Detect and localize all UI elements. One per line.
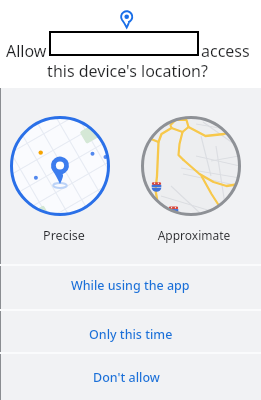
button[interactable] <box>141 116 241 216</box>
staticText: Precise <box>14 227 114 244</box>
staticText: Only this time <box>89 326 173 343</box>
staticText: Allow <box>6 40 47 62</box>
staticText: access <box>201 40 250 62</box>
staticText: Approximate <box>144 227 244 243</box>
staticText: this device's location? <box>0 60 258 82</box>
button[interactable]: While using the app <box>0 264 261 307</box>
button[interactable]: Only this time <box>0 313 261 356</box>
button[interactable] <box>10 116 110 216</box>
button[interactable]: Don't allow <box>0 354 261 400</box>
staticText: While using the app <box>71 277 190 294</box>
staticText: Don't allow <box>93 369 160 386</box>
